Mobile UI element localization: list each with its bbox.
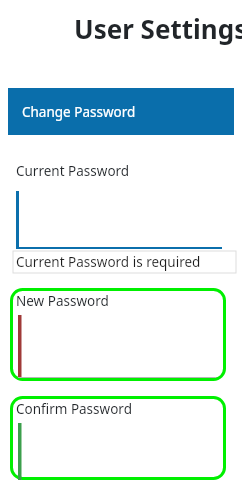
button[interactable]: Change Password [8,88,234,135]
staticText: Current Password [16,162,130,180]
button[interactable]: Current Password input [16,191,222,249]
button[interactable]: Confirm Password input [10,396,226,480]
staticText: Change Password [22,103,136,121]
staticText: Current Password is required [16,253,201,271]
button[interactable]: New Password input [10,288,226,381]
staticText: New Password [16,292,109,310]
staticText: User Settings [74,11,242,46]
staticText: Confirm Password [16,400,132,418]
